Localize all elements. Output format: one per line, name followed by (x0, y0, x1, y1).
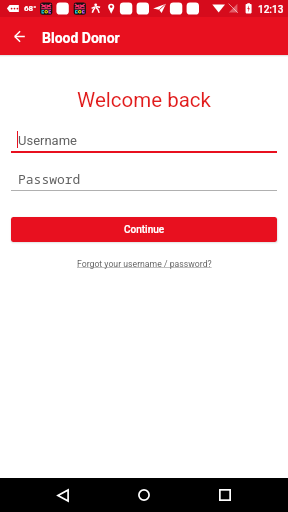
button[interactable]: Recent apps (208, 478, 242, 512)
button[interactable]: Continue (11, 217, 277, 242)
staticText: Blood Donor (42, 30, 120, 46)
button[interactable]: Password (11, 170, 277, 184)
staticText: Password (18, 170, 81, 184)
button[interactable]: Forgot your username / password? (77, 259, 212, 269)
staticText: 68° (24, 4, 37, 13)
staticText: Welcome back (0, 88, 288, 112)
button[interactable]: Back (46, 478, 80, 512)
button[interactable]: Home (127, 478, 161, 512)
button[interactable]: Back (5, 22, 34, 51)
staticText: Username (18, 133, 77, 148)
staticText: 12:13 (258, 4, 284, 16)
staticText: Continue (124, 224, 165, 236)
button[interactable]: Username (11, 128, 277, 152)
